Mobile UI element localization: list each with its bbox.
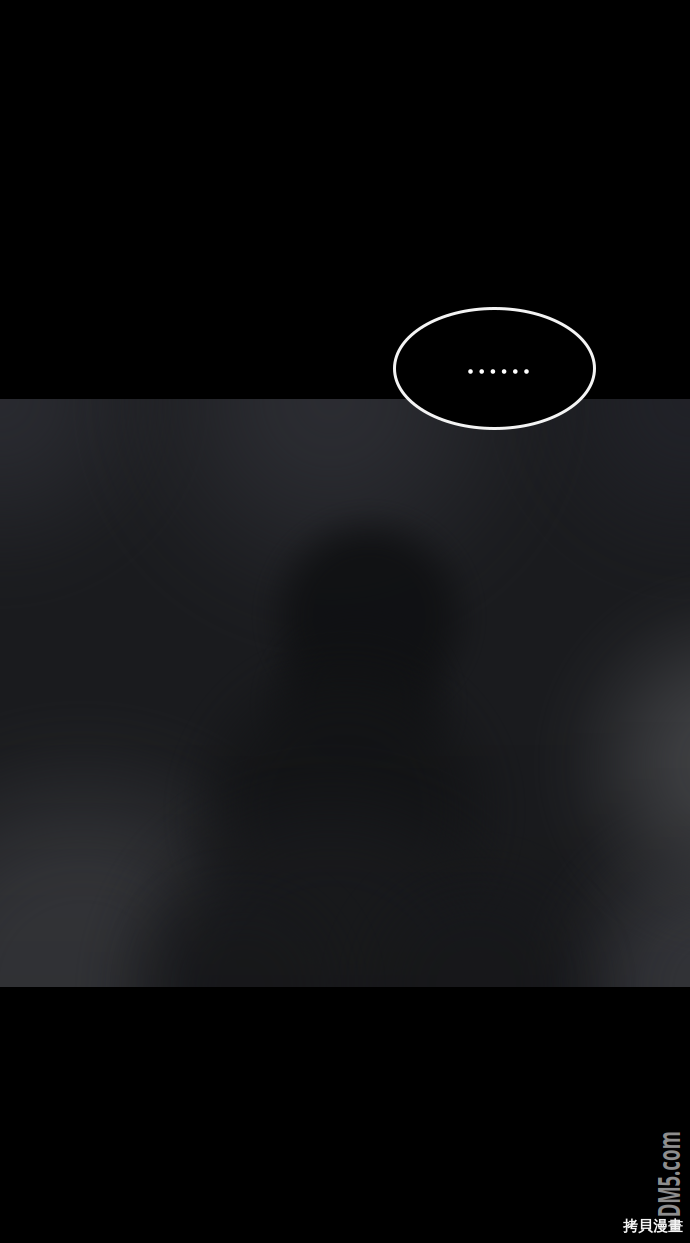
staticText: DM5.com [594,1153,690,1195]
staticText: 拷貝漫畫 [623,1217,683,1235]
